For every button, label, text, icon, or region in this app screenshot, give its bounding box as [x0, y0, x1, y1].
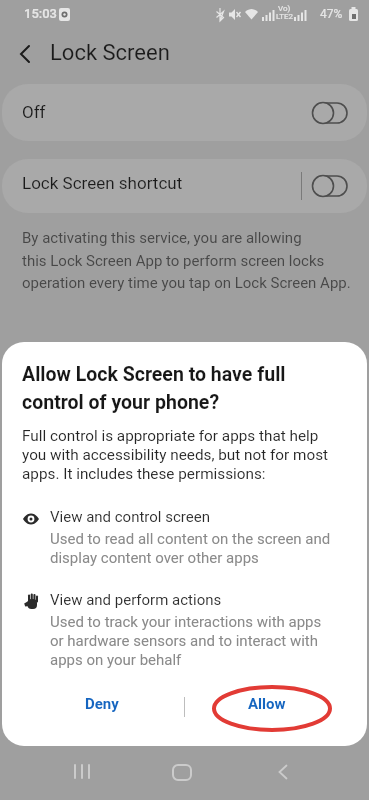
button[interactable] — [18, 45, 32, 63]
staticText: LTE2 — [276, 12, 294, 21]
button[interactable]: Lock Screen shortcut — [2, 159, 367, 213]
staticText: 15:03 — [24, 6, 58, 21]
staticText: Full control is appropriate for apps tha… — [22, 427, 329, 482]
button[interactable] — [277, 764, 289, 781]
staticText: Deny — [85, 695, 119, 713]
button[interactable]: Off — [2, 84, 367, 141]
staticText: Allow Lock Screen to have full control o… — [22, 363, 286, 414]
button[interactable] — [172, 764, 193, 781]
staticText: Vo) — [278, 4, 291, 13]
staticText: Off — [22, 102, 46, 122]
staticText: Used to read all content on the screen a… — [50, 530, 331, 566]
staticText: Used to track your interactions with app… — [50, 613, 322, 668]
staticText: 47% — [320, 7, 343, 21]
button[interactable] — [70, 764, 94, 781]
button[interactable]: Allow — [207, 684, 327, 724]
button[interactable]: Deny — [42, 684, 162, 724]
staticText: View and control screen — [50, 508, 210, 526]
staticText: Lock Screen — [50, 40, 170, 66]
staticText: Allow — [248, 695, 286, 713]
staticText: By activating this service, you are allo… — [22, 229, 351, 291]
staticText: Lock Screen shortcut — [22, 173, 183, 193]
staticText: View and perform actions — [50, 591, 222, 609]
